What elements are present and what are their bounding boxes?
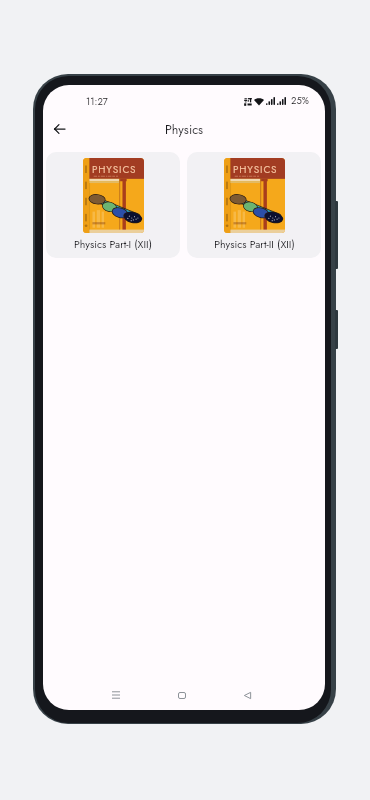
staticText: 25% (291, 94, 309, 108)
button[interactable]: PHYSICS (46, 152, 180, 258)
staticText: Physics Part-II (XII) (214, 237, 295, 252)
staticText: PHYSICS (233, 162, 278, 176)
staticText: Physics (165, 121, 204, 139)
staticText: PHYSICS (92, 162, 137, 176)
button[interactable]: Home (162, 685, 202, 705)
button[interactable]: Back (46, 116, 72, 142)
staticText: Physics Part-I (XII) (74, 237, 152, 252)
staticText: 11:27 (86, 95, 108, 109)
button[interactable]: Recent apps (96, 685, 136, 705)
button[interactable]: Back (227, 685, 267, 705)
button[interactable]: PHYSICS (187, 152, 321, 258)
